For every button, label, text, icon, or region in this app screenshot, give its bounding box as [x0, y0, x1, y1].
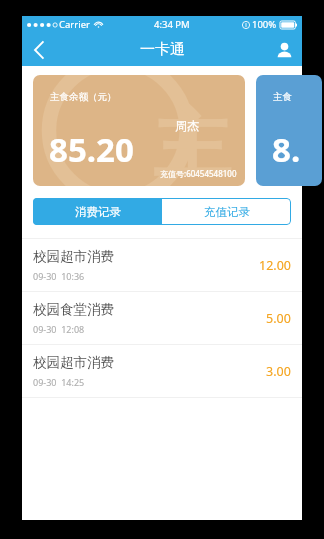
button[interactable]: Profile [266, 33, 302, 66]
staticText: 一卡通 [140, 40, 185, 59]
staticText: 校园食堂消费 [33, 301, 114, 318]
button[interactable]: 主 [33, 75, 245, 186]
staticText: 3.00 [266, 363, 291, 380]
staticText: 12.00 [259, 257, 291, 274]
staticText: 5.00 [266, 310, 291, 327]
staticText: 100% [252, 18, 277, 31]
staticText: 充值记录 [204, 205, 250, 219]
staticText: 校园超市消费 [33, 354, 114, 371]
button[interactable]: Back [22, 33, 56, 66]
staticText: 主 [153, 96, 231, 186]
button[interactable]: 充值记录 [162, 198, 291, 225]
button[interactable]: 校园食堂消费 [22, 292, 302, 344]
staticText: 09-30 14:25 [33, 376, 85, 388]
staticText: 8. [272, 127, 301, 172]
staticText: 主食余额（元） [50, 91, 117, 103]
button[interactable]: 消费记录 [33, 198, 162, 225]
staticText: 充值号:60454548100 [160, 168, 237, 179]
button[interactable]: 校园超市消费 [22, 345, 302, 397]
staticText: 09-30 12:08 [33, 323, 85, 335]
button[interactable]: 校园超市消费 [22, 239, 302, 291]
staticText: 09-30 10:36 [33, 270, 85, 282]
staticText: 4:34 PM [154, 18, 190, 31]
staticText: 主食 [273, 91, 292, 103]
staticText: 周杰 [175, 118, 199, 133]
button[interactable]: 主食 [256, 75, 322, 186]
staticText: 校园超市消费 [33, 248, 114, 265]
staticText: 85.20 [49, 127, 134, 172]
staticText: 消费记录 [75, 205, 121, 219]
staticText: Carrier [59, 18, 90, 31]
